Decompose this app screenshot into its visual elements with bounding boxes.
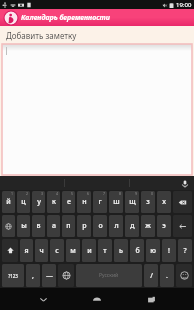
- button[interactable]: Emoji: [176, 264, 192, 287]
- button[interactable]: Добавить заметку: [6, 30, 194, 41]
- button[interactable]: х: [157, 191, 171, 213]
- button[interactable]: Русский: [76, 264, 142, 287]
- button[interactable]: л: [109, 215, 123, 237]
- button[interactable]: э: [157, 215, 171, 237]
- button[interactable]: е: [62, 191, 75, 213]
- button[interactable]: в: [32, 215, 45, 237]
- button[interactable]: /: [144, 264, 158, 287]
- staticText: е: [67, 197, 71, 207]
- button[interactable]: ч: [35, 239, 48, 262]
- button[interactable]: Enter: [173, 215, 192, 237]
- button[interactable]: [130, 176, 194, 190]
- button[interactable]: п: [62, 215, 75, 237]
- staticText: а: [52, 221, 56, 231]
- button[interactable]: к: [47, 191, 60, 213]
- staticText: 0: [151, 191, 154, 196]
- button[interactable]: [2, 215, 15, 237]
- button[interactable]: р: [77, 215, 91, 237]
- staticText: ж: [145, 221, 151, 231]
- button[interactable]: —: [42, 264, 56, 287]
- button[interactable]: м: [66, 239, 80, 262]
- button[interactable]: Voice input: [179, 178, 190, 189]
- staticText: ?: [183, 246, 187, 256]
- staticText: с: [55, 246, 59, 256]
- staticText: 8: [119, 191, 122, 196]
- staticText: у: [37, 197, 41, 207]
- staticText: й: [6, 197, 11, 207]
- staticText: х: [162, 197, 166, 207]
- button[interactable]: ы: [17, 215, 30, 237]
- staticText: 7: [103, 191, 106, 196]
- button[interactable]: и: [82, 239, 96, 262]
- staticText: о: [98, 221, 103, 231]
- staticText: ю: [150, 246, 156, 256]
- staticText: ш: [113, 197, 120, 207]
- staticText: т: [103, 246, 107, 256]
- button[interactable]: Backspace: [173, 191, 192, 213]
- button[interactable]: ж: [141, 215, 155, 237]
- staticText: 5: [71, 191, 74, 196]
- button[interactable]: Shift: [2, 239, 18, 262]
- staticText: л: [114, 221, 119, 231]
- button[interactable]: щ: [125, 191, 139, 213]
- button[interactable]: н: [77, 191, 91, 213]
- button[interactable]: ?123: [2, 264, 24, 287]
- staticText: Русский: [99, 272, 119, 279]
- staticText: б: [135, 246, 140, 256]
- staticText: —: [46, 271, 53, 281]
- staticText: 9: [135, 191, 138, 196]
- staticText: Добавить заметку: [6, 30, 77, 41]
- button[interactable]: .: [160, 264, 174, 287]
- staticText: 6: [87, 191, 90, 196]
- staticText: м: [70, 246, 76, 256]
- staticText: я: [24, 246, 29, 256]
- staticText: и: [87, 246, 92, 256]
- staticText: в: [36, 221, 41, 231]
- staticText: .: [166, 271, 168, 281]
- button[interactable]: с: [50, 239, 64, 262]
- button[interactable]: о: [93, 215, 107, 237]
- button[interactable]: б: [130, 239, 144, 262]
- button[interactable]: т: [98, 239, 112, 262]
- button[interactable]: ,: [26, 264, 40, 287]
- staticText: к: [52, 197, 56, 207]
- button[interactable]: я: [20, 239, 33, 262]
- button[interactable]: д: [125, 215, 139, 237]
- staticText: ы: [21, 221, 27, 231]
- staticText: ?123: [8, 273, 18, 279]
- button[interactable]: у: [32, 191, 45, 213]
- staticText: п: [66, 221, 71, 231]
- staticText: ь: [119, 246, 123, 256]
- button[interactable]: !: [162, 239, 176, 262]
- button[interactable]: Hide keyboard: [32, 288, 54, 310]
- staticText: ц: [21, 197, 26, 207]
- staticText: !: [168, 246, 170, 256]
- button[interactable]: App icon, navigate up: [3, 10, 18, 25]
- button[interactable]: ?: [178, 239, 192, 262]
- staticText: д: [130, 221, 135, 231]
- staticText: 2: [26, 191, 29, 196]
- staticText: 3: [41, 191, 44, 196]
- button[interactable]: ш: [109, 191, 123, 213]
- button[interactable]: ц: [17, 191, 30, 213]
- staticText: 19:00: [176, 1, 192, 9]
- staticText: щ: [129, 197, 136, 207]
- staticText: р: [82, 221, 87, 231]
- button[interactable]: г: [93, 191, 107, 213]
- staticText: 4: [56, 191, 59, 196]
- staticText: н: [82, 197, 87, 207]
- staticText: 1: [11, 191, 14, 196]
- button[interactable]: з: [141, 191, 155, 213]
- button[interactable]: й: [2, 191, 15, 213]
- button[interactable]: а: [47, 215, 60, 237]
- staticText: /: [150, 271, 153, 281]
- button[interactable]: Change language: [58, 264, 74, 287]
- button[interactable]: Recents: [140, 288, 162, 310]
- button[interactable]: ю: [146, 239, 160, 262]
- staticText: г: [98, 197, 102, 207]
- button[interactable]: ь: [114, 239, 128, 262]
- button[interactable]: [2, 44, 192, 175]
- button[interactable]: Home: [86, 288, 108, 310]
